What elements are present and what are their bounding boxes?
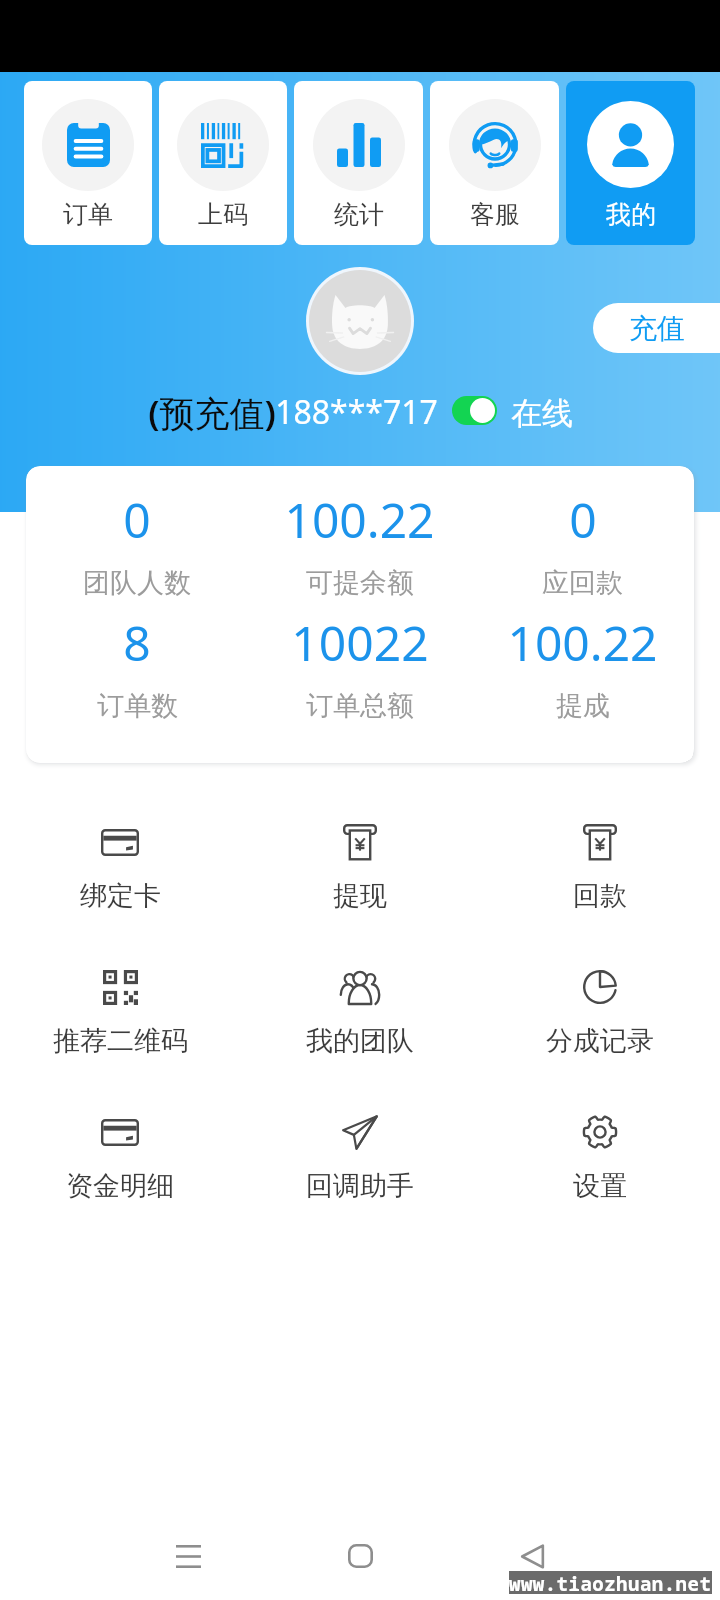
staticText: (预充值) <box>148 389 276 437</box>
staticText: 我的团队 <box>306 1024 414 1058</box>
staticText: 提成 <box>556 689 610 723</box>
staticText: 分成记录 <box>546 1024 654 1058</box>
staticText: 上码 <box>198 199 248 230</box>
button[interactable]: 上码 <box>159 81 287 245</box>
button[interactable]: 充值 <box>593 303 720 353</box>
staticText: 客服 <box>470 199 520 230</box>
staticText: 应回款 <box>542 566 623 600</box>
button[interactable]: 绑定卡 <box>0 818 240 913</box>
staticText: 100.22 <box>284 487 435 552</box>
staticText: 绑定卡 <box>80 879 161 913</box>
button[interactable]: 提现 <box>240 818 480 913</box>
staticText: 0 <box>123 487 151 552</box>
staticText: 提现 <box>333 879 387 913</box>
button[interactable]: 分成记录 <box>480 963 720 1058</box>
staticText: 订单总额 <box>306 689 414 723</box>
staticText: 10022 <box>291 610 429 675</box>
staticText: 设置 <box>573 1169 627 1203</box>
staticText: 推荐二维码 <box>53 1024 188 1058</box>
staticText: 充值 <box>629 311 685 346</box>
button[interactable]: 资金明细 <box>0 1108 240 1203</box>
staticText: 我的 <box>606 199 656 230</box>
staticText: 可提余额 <box>306 566 414 600</box>
staticText: 100.22 <box>507 610 658 675</box>
staticText: 在线 <box>511 394 573 433</box>
button[interactable]: 回款 <box>480 818 720 913</box>
staticText: 团队人数 <box>83 566 191 600</box>
staticText: 188***717 <box>275 390 438 434</box>
button[interactable]: 我的 <box>566 81 695 245</box>
button[interactable]: 统计 <box>294 81 423 245</box>
button[interactable]: 推荐二维码 <box>0 963 240 1058</box>
staticText: www.tiaozhuan.net <box>509 1571 712 1594</box>
button[interactable]: 订单 <box>24 81 152 245</box>
button[interactable]: Back <box>492 1516 572 1596</box>
staticText: 统计 <box>334 199 384 230</box>
button[interactable]: Home <box>320 1516 400 1596</box>
staticText: 订单数 <box>97 689 178 723</box>
staticText: 8 <box>123 610 151 675</box>
button[interactable]: 我的团队 <box>240 963 480 1058</box>
button[interactable]: 回调助手 <box>240 1108 480 1203</box>
staticText: 订单 <box>63 199 113 230</box>
button[interactable]: 设置 <box>480 1108 720 1203</box>
staticText: 回调助手 <box>306 1169 414 1203</box>
button[interactable]: 客服 <box>430 81 559 245</box>
staticText: 0 <box>569 487 597 552</box>
button[interactable]: Online status toggle <box>452 396 497 425</box>
staticText: 回款 <box>573 879 627 913</box>
staticText: 资金明细 <box>66 1169 174 1203</box>
button[interactable]: Recent apps <box>148 1516 228 1596</box>
